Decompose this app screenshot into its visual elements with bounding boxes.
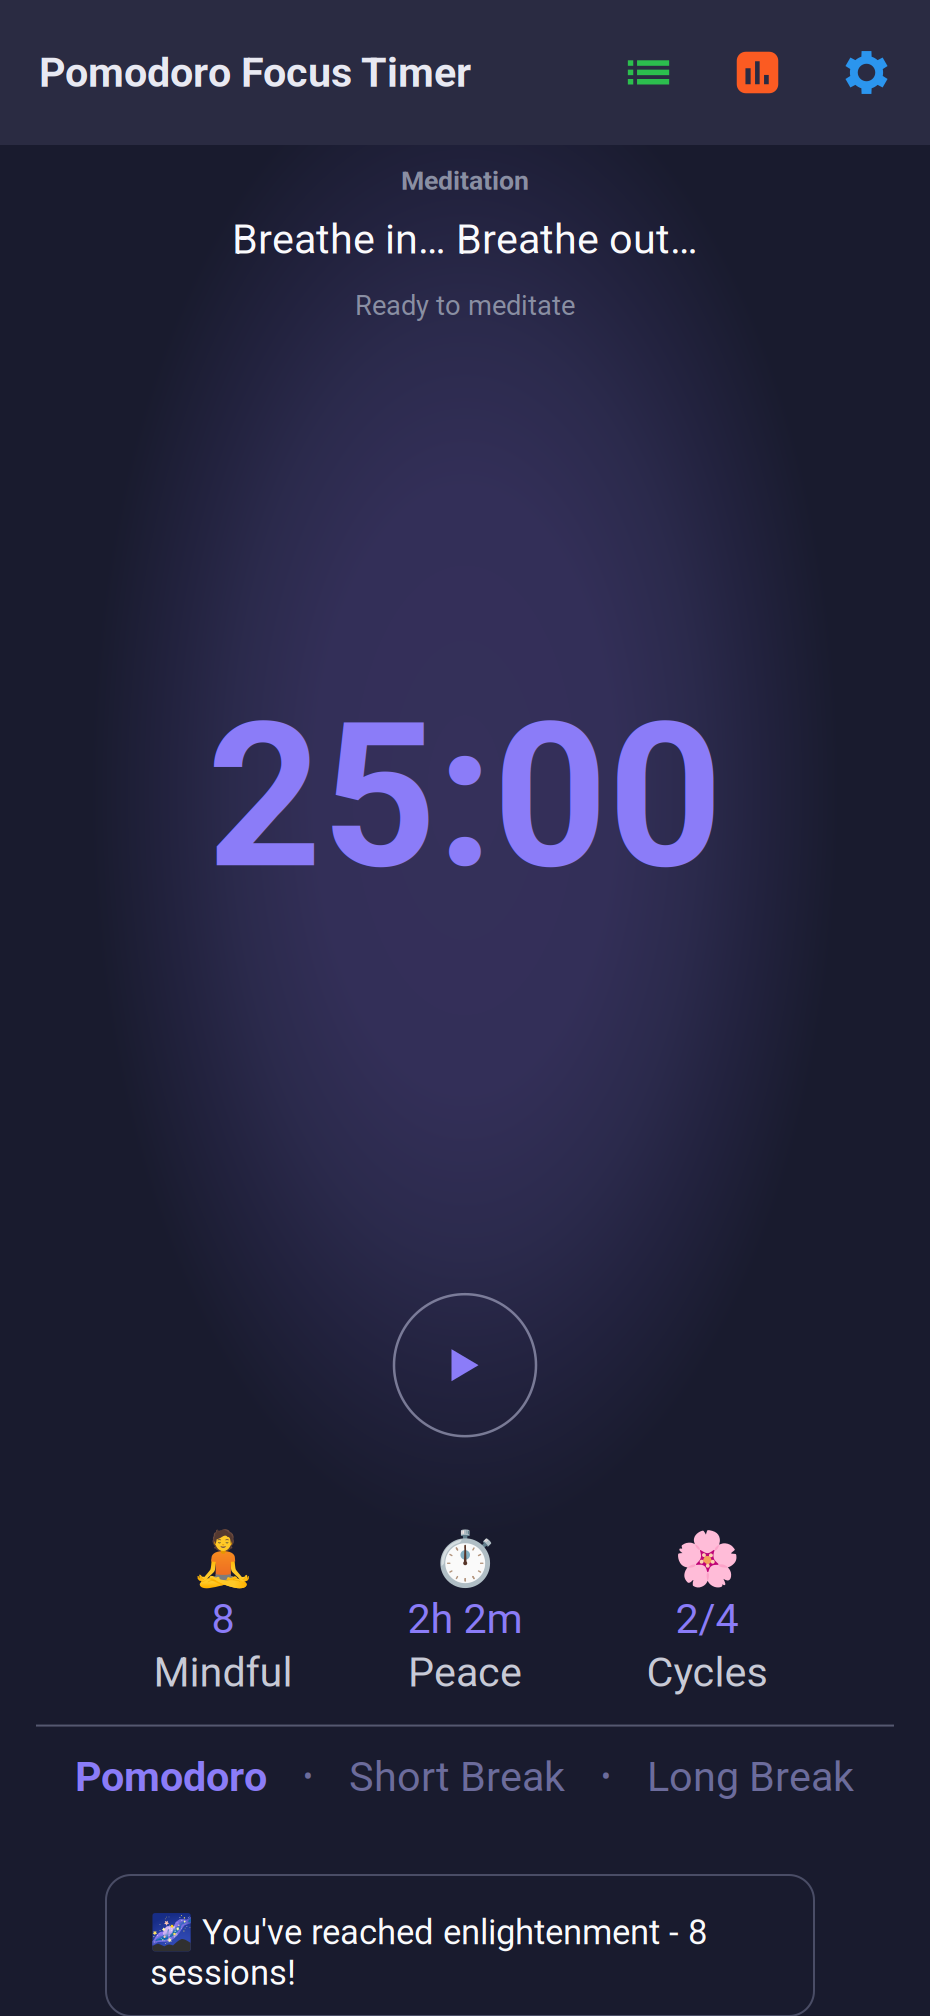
button[interactable]: Short Break: [349, 1753, 565, 1801]
staticText: Mindful: [153, 1648, 292, 1696]
button[interactable]: Start timer: [394, 1294, 536, 1436]
button[interactable]: Task list: [594, 24, 703, 120]
staticText: 🌸: [674, 1527, 740, 1590]
staticText: Peace: [408, 1648, 522, 1696]
staticText: 2h 2m: [407, 1595, 522, 1643]
staticText: 2/4: [675, 1595, 738, 1643]
button[interactable]: Pomodoro: [75, 1753, 267, 1801]
staticText: Pomodoro Focus Timer: [39, 48, 471, 97]
staticText: 🌌 You've reached enlightenment - 8 sessi…: [150, 1912, 707, 1993]
staticText: •: [303, 1760, 313, 1794]
staticText: 25:00: [207, 680, 723, 914]
staticText: Long Break: [647, 1753, 854, 1801]
button[interactable]: Long Break: [647, 1753, 854, 1801]
staticText: 8: [211, 1595, 234, 1643]
staticText: Short Break: [349, 1753, 565, 1801]
staticText: ⏱️: [432, 1527, 498, 1590]
staticText: Meditation: [401, 165, 529, 196]
staticText: Pomodoro: [75, 1753, 267, 1801]
button[interactable]: Statistics: [703, 24, 812, 120]
staticText: Ready to meditate: [355, 290, 575, 322]
staticText: 🧘: [190, 1527, 256, 1590]
staticText: Breathe in… Breathe out…: [232, 215, 698, 264]
staticText: Cycles: [646, 1648, 767, 1696]
button[interactable]: Settings: [812, 24, 921, 120]
staticText: •: [601, 1760, 611, 1794]
